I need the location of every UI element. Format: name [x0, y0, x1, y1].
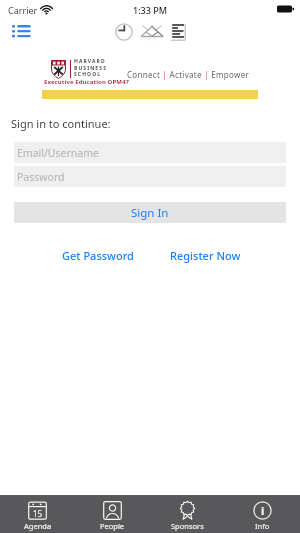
button[interactable]: 15	[0, 495, 75, 533]
button[interactable]: i	[225, 495, 300, 533]
staticText: Info	[255, 521, 270, 531]
staticText: 15	[33, 508, 43, 519]
staticText: Carrier	[8, 4, 38, 16]
button[interactable]: Sponsors	[150, 495, 225, 533]
staticText: 1:33 PM	[133, 4, 167, 16]
button[interactable]: Sign In	[14, 202, 286, 223]
button[interactable]: Get Password	[62, 248, 134, 263]
button[interactable]	[140, 23, 164, 41]
staticText: HARVARD BUSINESS SCHOOL	[74, 58, 107, 78]
staticText: Password	[17, 170, 65, 184]
staticText: Email/Username	[17, 146, 99, 160]
button[interactable]	[12, 25, 31, 38]
staticText: i	[261, 503, 265, 518]
staticText: Sponsors	[171, 521, 204, 531]
button[interactable]: Password	[14, 166, 286, 187]
staticText: People	[100, 521, 125, 531]
staticText: Sign in to continue:	[11, 116, 111, 131]
button[interactable]: Register Now	[170, 248, 241, 263]
staticText: Sign In	[131, 205, 169, 221]
button[interactable]	[170, 23, 186, 41]
staticText: Agenda	[24, 521, 52, 531]
staticText: Connect | Activate | Empower	[127, 69, 250, 80]
button[interactable]	[115, 23, 133, 41]
button[interactable]: Email/Username	[14, 142, 286, 163]
button[interactable]: People	[75, 495, 150, 533]
staticText: Executive Education OPM47	[44, 78, 130, 86]
